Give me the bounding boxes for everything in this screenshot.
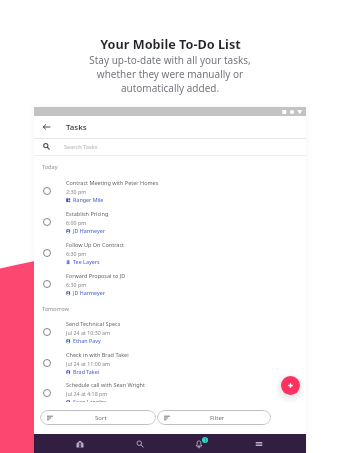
button[interactable]: Back (34, 116, 58, 138)
staticText: Stay up-to-date with all your tasks, whe… (89, 53, 251, 95)
staticText: Your Mobile To-Do List (100, 35, 241, 52)
staticText: Brad Takei (73, 368, 100, 375)
staticText: 6:30 pm (66, 281, 87, 288)
button[interactable]: Sort (40, 410, 156, 425)
staticText: Tomorrow (42, 305, 69, 313)
staticText: 6:00 pm (66, 219, 87, 226)
button[interactable]: Search Tasks (34, 138, 306, 155)
staticText: Establish Pricing (66, 210, 109, 217)
staticText: Tee Layers (73, 258, 100, 265)
button[interactable]: Add task (281, 376, 300, 395)
staticText: Jul 24 at 4:18 pm (66, 390, 108, 397)
button[interactable]: Search (128, 434, 152, 453)
staticText: Schedule call with Sean Wright (66, 381, 145, 388)
staticText: Search Tasks (64, 143, 98, 151)
staticText: Today (42, 163, 58, 171)
staticText: Tasks (66, 122, 87, 133)
staticText: Filter (210, 414, 225, 422)
button[interactable]: Notifications (187, 434, 211, 453)
button[interactable]: Filter (157, 410, 271, 425)
staticText: Follow Up On Contract (66, 241, 125, 248)
button[interactable]: Establish Pricing (34, 207, 306, 237)
staticText: Ethan Pavy (73, 337, 101, 344)
button[interactable]: Menu (247, 434, 271, 453)
staticText: Ranger Mile (73, 196, 104, 203)
staticText: Forward Proposal to JD (66, 272, 126, 279)
button[interactable]: Send Technical Specs (34, 317, 306, 347)
staticText: 1 (204, 437, 207, 443)
button[interactable]: Schedule call with Sean Wright (34, 378, 306, 402)
staticText: Send Technical Specs (66, 320, 121, 327)
button[interactable]: Contract Meeting with Peter Homes (34, 176, 306, 206)
staticText: JD Harmeyer (73, 227, 106, 234)
button[interactable]: Check in with Brad Takei (34, 348, 306, 378)
staticText: Sean Langley (73, 398, 107, 402)
staticText: Jul 24 at 11:00 am (66, 360, 111, 367)
staticText: Contract Meeting with Peter Homes (66, 179, 159, 186)
staticText: 6:30 pm (66, 250, 87, 257)
button[interactable]: Follow Up On Contract (34, 238, 306, 268)
staticText: JD Harmeyer (73, 289, 106, 296)
staticText: 2:30 pm (66, 188, 87, 195)
staticText: Check in with Brad Takei (66, 351, 129, 358)
staticText: Jul 24 at 10:30 am (66, 329, 111, 336)
button[interactable]: Home (68, 434, 92, 453)
button[interactable]: Forward Proposal to JD (34, 269, 306, 299)
staticText: Sort (95, 414, 107, 422)
